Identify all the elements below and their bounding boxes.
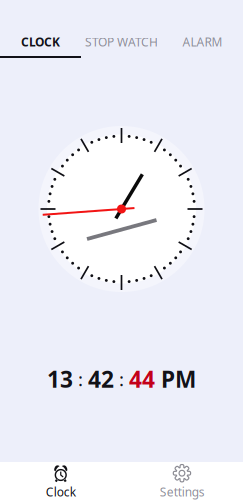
staticText: STOP WATCH bbox=[85, 34, 158, 50]
button[interactable]: Settings bbox=[121, 462, 243, 500]
staticText: CLOCK bbox=[21, 34, 60, 50]
staticText: PM bbox=[155, 364, 196, 394]
staticText: ALARM bbox=[182, 34, 222, 50]
button[interactable]: STOP WATCH bbox=[81, 0, 162, 58]
button[interactable]: Clock bbox=[0, 462, 121, 500]
staticText: 42 bbox=[88, 364, 114, 394]
button[interactable]: ALARM bbox=[162, 0, 243, 58]
staticText: Settings bbox=[160, 484, 205, 500]
staticText: 13 bbox=[47, 364, 73, 394]
staticText: 44 bbox=[129, 364, 155, 394]
button[interactable]: CLOCK bbox=[0, 0, 81, 58]
staticText: : bbox=[114, 367, 129, 391]
staticText: : bbox=[73, 367, 88, 391]
staticText: Clock bbox=[46, 484, 76, 500]
